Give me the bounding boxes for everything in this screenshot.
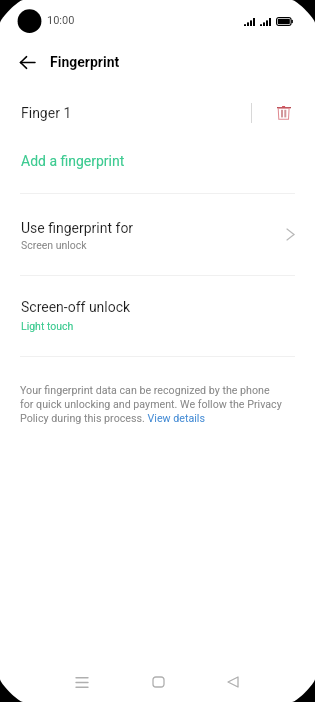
button[interactable]: Home — [138, 662, 178, 702]
button[interactable]: Back — [10, 45, 44, 79]
staticText: Fingerprint — [50, 54, 120, 70]
button[interactable]: Screen-off unlock — [0, 276, 315, 356]
button[interactable]: Add a fingerprint — [0, 143, 315, 183]
staticText: Add a fingerprint — [21, 153, 125, 169]
staticText: Screen-off unlock — [21, 299, 131, 315]
staticText: Finger 1 — [21, 105, 72, 121]
staticText: Light touch — [21, 320, 74, 332]
staticText: Screen unlock — [21, 239, 87, 251]
staticText: Use fingerprint for — [21, 220, 134, 236]
staticText: 10:00 — [47, 14, 75, 27]
button[interactable]: Delete fingerprint — [268, 93, 299, 133]
button[interactable]: Finger 1 — [0, 95, 315, 135]
button[interactable]: Back — [213, 662, 253, 702]
staticText: Your fingerprint data can be recognized … — [20, 384, 284, 425]
button[interactable]: Recent apps — [62, 662, 102, 702]
button[interactable]: Use fingerprint for — [0, 194, 315, 275]
